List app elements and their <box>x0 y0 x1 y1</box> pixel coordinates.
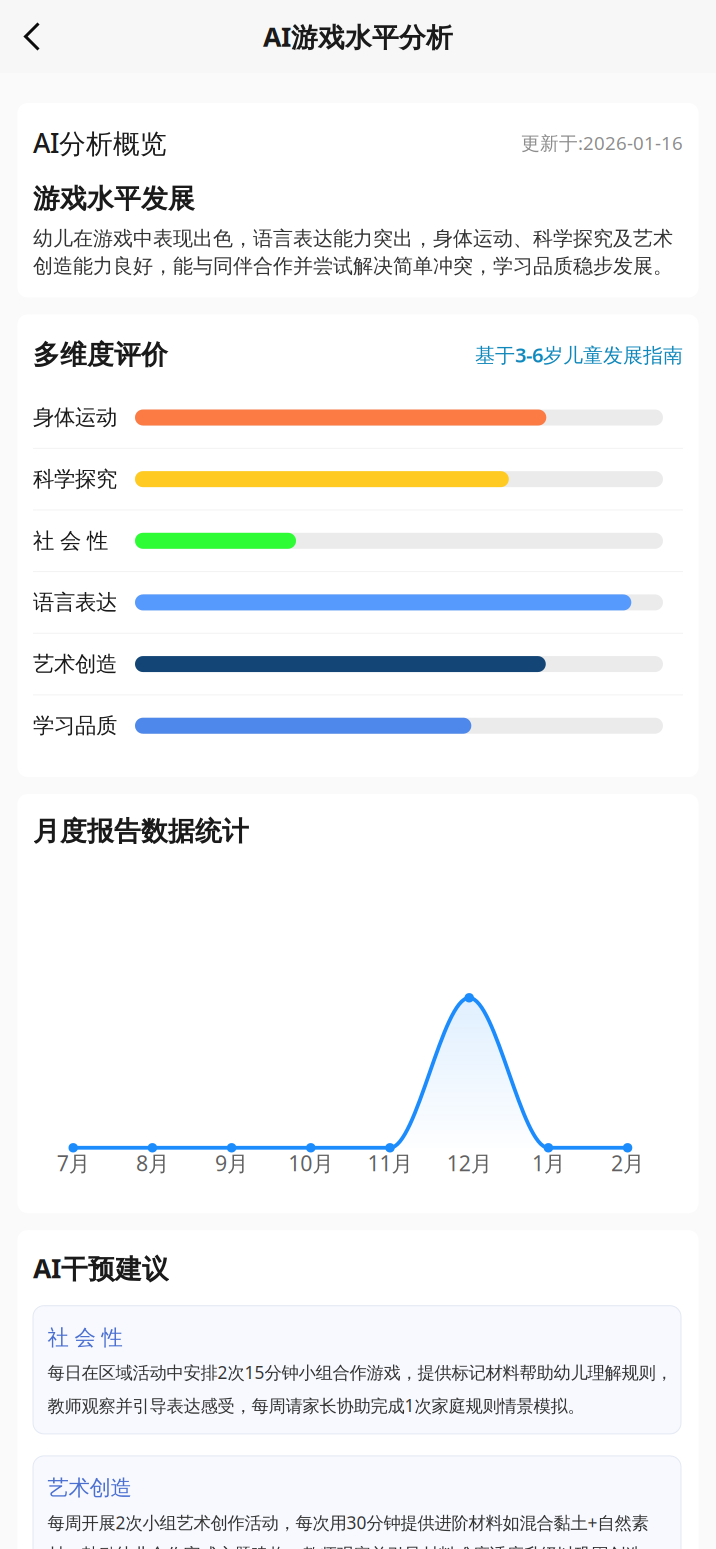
button[interactable]: Back <box>8 12 56 60</box>
staticText: 语言表达 <box>33 589 117 615</box>
staticText: 12月 <box>447 1149 492 1177</box>
staticText: 科学探究 <box>33 466 117 492</box>
staticText: 9月 <box>215 1149 248 1177</box>
staticText: 艺术创造 <box>33 651 117 677</box>
staticText: 1月 <box>532 1149 565 1177</box>
staticText: 每周开展2次小组艺术创作活动，每次用30分钟提供进阶材料如混合黏土+自然素 材，… <box>47 1511 648 1549</box>
staticText: 幼儿在游戏中表现出色，语言表达能力突出，身体运动、科学探究及艺术 创造能力良好，… <box>33 226 673 278</box>
staticText: 10月 <box>288 1149 333 1177</box>
staticText: 7月 <box>57 1149 90 1177</box>
staticText: AI分析概览 <box>33 125 167 161</box>
staticText: 社 会 性 <box>33 528 108 554</box>
staticText: 每日在区域活动中安排2次15分钟小组合作游戏，提供标记材料帮助幼儿理解规则， 教… <box>47 1361 672 1417</box>
staticText: 8月 <box>136 1149 169 1177</box>
staticText: 基于3-6岁儿童发展指南 <box>475 341 683 368</box>
staticText: 11月 <box>367 1149 412 1177</box>
staticText: 社 会 性 <box>47 1325 122 1351</box>
staticText: 2月 <box>611 1149 644 1177</box>
staticText: 学习品质 <box>33 713 117 739</box>
staticText: 多维度评价 <box>33 338 168 371</box>
staticText: 艺术创造 <box>47 1475 131 1501</box>
staticText: 月度报告数据统计 <box>33 815 249 848</box>
staticText: 游戏水平发展 <box>33 183 195 215</box>
staticText: AI干预建议 <box>33 1250 169 1286</box>
staticText: 身体运动 <box>33 404 117 431</box>
staticText: AI游戏水平分析 <box>263 19 453 54</box>
staticText: 更新于:2026-01-16 <box>521 130 683 155</box>
